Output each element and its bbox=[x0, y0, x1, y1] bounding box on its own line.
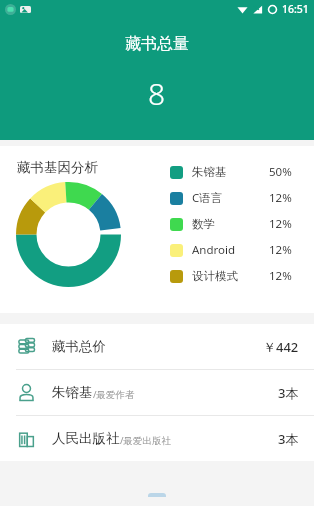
staticText: 12% bbox=[269, 268, 292, 284]
button[interactable]: 设计模式 bbox=[170, 263, 304, 289]
staticText: 50% bbox=[269, 164, 292, 180]
staticText: 8 bbox=[148, 73, 166, 114]
staticText: 藏书基因分析 bbox=[17, 159, 98, 176]
staticText: /最爱作者 bbox=[93, 388, 135, 401]
staticText: 设计模式 bbox=[192, 269, 238, 283]
button[interactable]: 数学 bbox=[170, 211, 304, 237]
button[interactable]: Android bbox=[170, 237, 304, 263]
staticText: 12% bbox=[269, 190, 292, 206]
staticText: 16:51 bbox=[282, 2, 309, 16]
staticText: 3本 bbox=[278, 430, 299, 448]
button[interactable]: 藏书总价 bbox=[0, 324, 314, 369]
staticText: 藏书总价 bbox=[52, 338, 106, 355]
button[interactable]: 朱镕基 bbox=[170, 159, 304, 185]
button[interactable]: C语言 bbox=[170, 185, 304, 211]
staticText: 3本 bbox=[278, 384, 299, 402]
staticText: 朱镕基 bbox=[52, 384, 93, 401]
staticText: 数学 bbox=[192, 217, 215, 231]
button[interactable]: 朱镕基 bbox=[0, 370, 314, 415]
button[interactable]: 人民出版社 bbox=[0, 416, 314, 461]
staticText: 12% bbox=[269, 242, 292, 258]
staticText: 人民出版社 bbox=[52, 430, 120, 447]
staticText: ￥442 bbox=[263, 338, 299, 356]
staticText: /最爱出版社 bbox=[120, 434, 172, 447]
staticText: 藏书总量 bbox=[125, 34, 189, 54]
staticText: Android bbox=[192, 242, 236, 258]
staticText: C语言 bbox=[192, 190, 223, 206]
button[interactable]: Add book bbox=[148, 493, 166, 497]
staticText: 朱镕基 bbox=[192, 165, 227, 179]
staticText: 12% bbox=[269, 216, 292, 232]
